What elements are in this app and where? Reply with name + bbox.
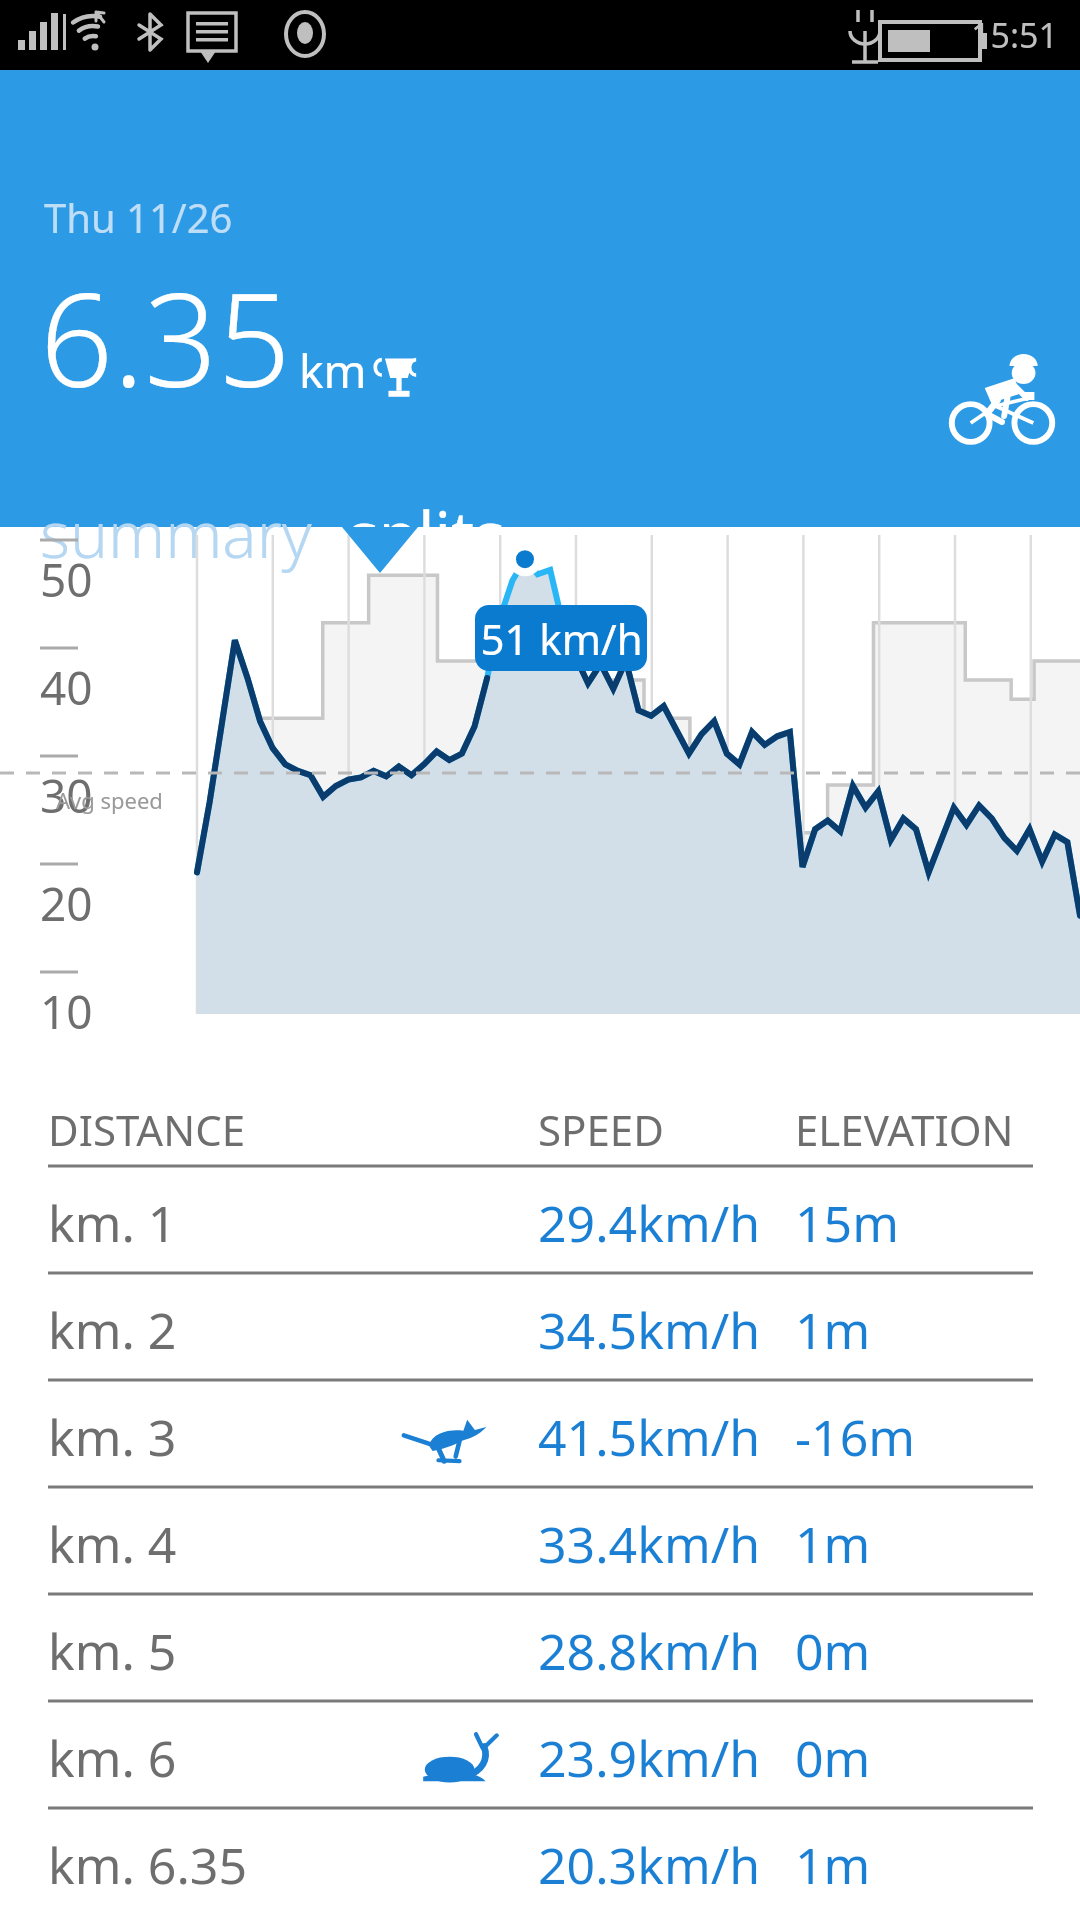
staticText: 6.35 <box>40 250 291 424</box>
staticText: km <box>299 339 367 402</box>
button[interactable]: splits <box>344 490 509 577</box>
staticText: 51 km/h <box>480 610 643 667</box>
staticText: km. 2 <box>48 1296 177 1364</box>
staticText: 50 <box>40 548 93 611</box>
staticText: 1m <box>795 1831 871 1899</box>
staticText: km. 3 <box>48 1403 177 1471</box>
staticText: km. 6 <box>48 1724 177 1792</box>
staticText: km. 4 <box>48 1510 177 1578</box>
staticText: 0m <box>795 1724 871 1792</box>
staticText: 1m <box>795 1296 871 1364</box>
staticText: 15m <box>795 1189 899 1257</box>
staticText: SPEED <box>538 1101 664 1158</box>
staticText: 29.4km/h <box>538 1189 761 1257</box>
button[interactable]: summary <box>36 490 316 577</box>
staticText: 28.8km/h <box>538 1617 761 1685</box>
button[interactable]: Cycling activity <box>948 348 1056 448</box>
button[interactable]: km. 6 <box>0 1702 1080 1807</box>
staticText: Avg speed <box>56 785 163 815</box>
button[interactable]: km. 2 <box>0 1274 1080 1379</box>
staticText: 40 <box>40 656 93 719</box>
staticText: 30 <box>40 764 93 827</box>
staticText: 20 <box>40 872 93 935</box>
button[interactable]: 51 km/h <box>475 605 647 671</box>
staticText: km. 5 <box>48 1617 177 1685</box>
staticText: ELEVATION <box>795 1101 1014 1158</box>
button[interactable]: km. 5 <box>0 1595 1080 1700</box>
staticText: km. 6.35 <box>48 1831 248 1899</box>
staticText: DISTANCE <box>48 1101 246 1158</box>
staticText: 23.9km/h <box>538 1724 761 1792</box>
staticText: 41.5km/h <box>538 1403 761 1471</box>
staticText: km. 1 <box>48 1189 177 1257</box>
staticText: 15:51 <box>971 12 1058 58</box>
staticText: 34.5km/h <box>538 1296 761 1364</box>
staticText: -16m <box>795 1403 916 1471</box>
button[interactable]: km. 6.35 <box>0 1809 1080 1914</box>
staticText: 33.4km/h <box>538 1510 761 1578</box>
staticText: 1m <box>795 1510 871 1578</box>
staticText: 10 <box>40 980 93 1043</box>
button[interactable]: km. 3 <box>0 1381 1080 1486</box>
staticText: 20.3km/h <box>538 1831 761 1899</box>
staticText: Thu 11/26 <box>44 190 233 244</box>
staticText: 0m <box>795 1617 871 1685</box>
button[interactable]: km. 4 <box>0 1488 1080 1593</box>
button[interactable]: km. 1 <box>0 1167 1080 1272</box>
